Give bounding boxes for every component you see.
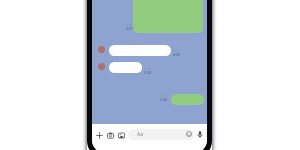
button[interactable] [171, 94, 204, 105]
button[interactable] [109, 45, 171, 56]
button[interactable] [133, 0, 203, 33]
button[interactable]: Camera [104, 129, 116, 141]
staticText: Aa [137, 131, 144, 138]
staticText: 2:36 [160, 97, 168, 102]
staticText: 오후 [160, 94, 167, 98]
button[interactable]: Profile picture [98, 63, 105, 70]
button[interactable]: Profile picture [98, 46, 105, 53]
button[interactable]: Add attachment [93, 129, 105, 141]
button[interactable]: Photos [115, 129, 127, 141]
button[interactable]: Voice message [194, 128, 206, 140]
staticText: 오후 [126, 23, 133, 27]
button[interactable]: Emoji [183, 128, 195, 140]
staticText: 2:31 [126, 26, 134, 31]
staticText: 오후 [173, 49, 180, 53]
staticText: 2:34 [144, 70, 152, 75]
staticText: 2:33 [173, 52, 181, 57]
button[interactable]: Aa [128, 129, 194, 140]
staticText: 오후 [144, 67, 151, 71]
button[interactable] [109, 62, 142, 73]
